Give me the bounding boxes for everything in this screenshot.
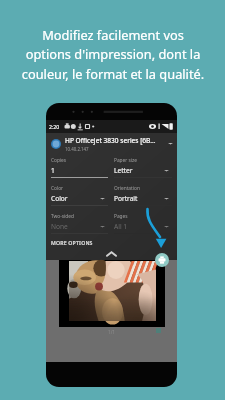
staticText: Paper size: [114, 157, 137, 164]
staticText: 1: [51, 166, 55, 175]
staticText: All 1: [114, 222, 128, 231]
button[interactable]: Print: [155, 253, 169, 267]
staticText: Modifiez facilement vos options d'impres…: [13, 26, 213, 83]
staticText: Color: [51, 185, 64, 192]
button[interactable]: Pages: [114, 213, 172, 234]
staticText: 2:20: [49, 123, 60, 130]
staticText: Orientation: [114, 185, 140, 192]
staticText: 10.40.2.147: [65, 146, 89, 152]
staticText: Two-sided: [51, 213, 74, 220]
button[interactable]: Paper size: [114, 157, 172, 178]
button[interactable]: MORE OPTIONS: [51, 239, 93, 246]
staticText: Portrait: [114, 194, 138, 203]
staticText: MORE OPTIONS: [51, 239, 93, 246]
staticText: 1/1: [108, 329, 115, 335]
button[interactable]: Color: [51, 185, 108, 206]
staticText: None: [51, 222, 68, 231]
staticText: Copies: [51, 157, 67, 164]
staticText: Color: [51, 194, 68, 203]
button[interactable]: Orientation: [114, 185, 172, 206]
button[interactable]: [59, 260, 165, 327]
staticText: HP OfficeJet 3830 series [6B...: [65, 136, 156, 145]
staticText: Pages: [114, 213, 128, 220]
button[interactable]: HP OfficeJet 3830 series [6B...: [51, 133, 173, 154]
staticText: Letter: [114, 166, 133, 175]
button[interactable]: Two-sided: [51, 213, 108, 234]
button[interactable]: Copies: [51, 157, 108, 178]
